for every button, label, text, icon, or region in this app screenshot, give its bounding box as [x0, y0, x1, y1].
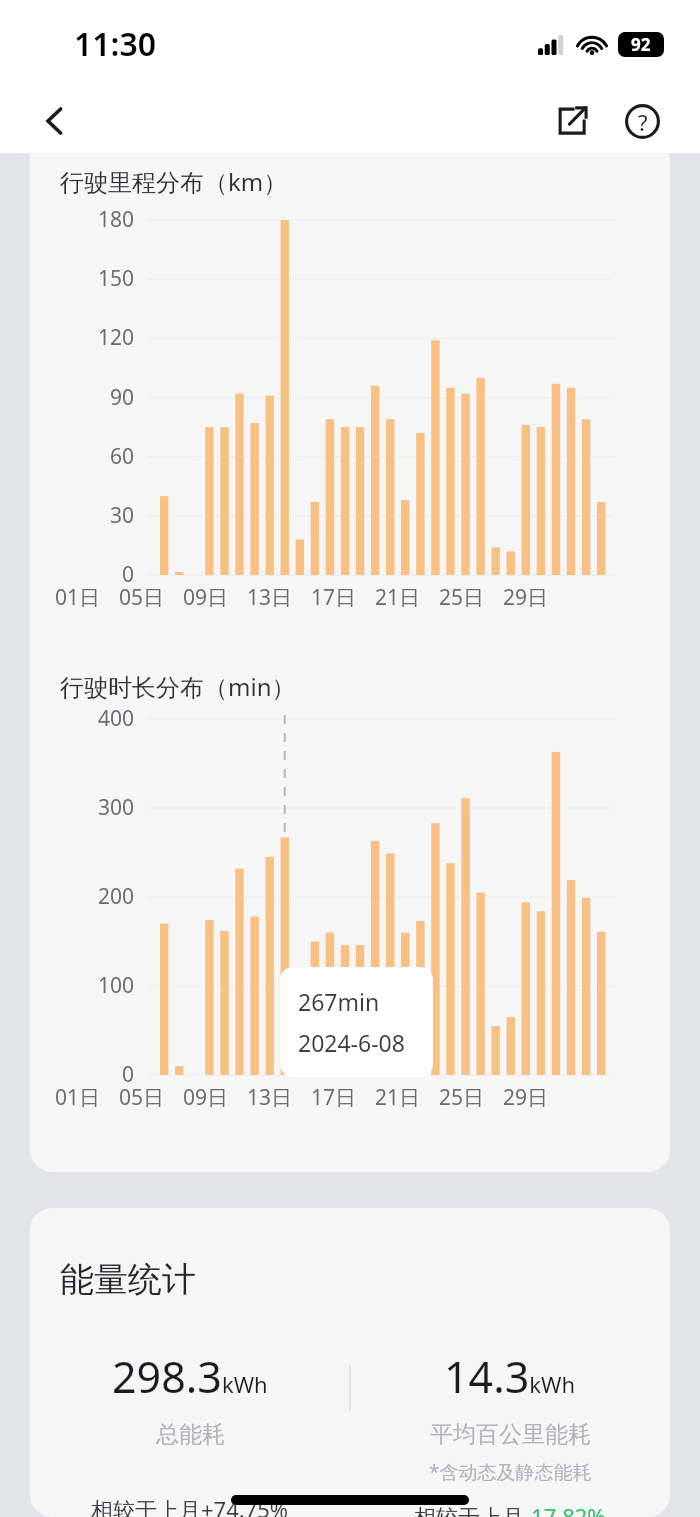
staticText: 25日 — [439, 583, 485, 612]
staticText: 01日 — [55, 583, 101, 612]
staticText: 21日 — [375, 1083, 421, 1112]
staticText: 平均百公里能耗 — [430, 1420, 591, 1449]
staticText: 120 — [30, 323, 134, 352]
staticText: 2024-6-08 — [298, 1027, 405, 1058]
staticText: 267min — [298, 986, 380, 1017]
staticText: 总能耗 — [156, 1420, 225, 1449]
button[interactable]: Share — [544, 93, 600, 149]
staticText: 09日 — [183, 583, 229, 612]
staticText: 相较于上月+74.75% — [91, 1494, 289, 1517]
staticText: 05日 — [119, 583, 165, 612]
staticText: 01日 — [55, 1083, 101, 1112]
button[interactable]: Back — [26, 92, 84, 150]
staticText: 行驶时长分布（min） — [60, 670, 296, 703]
button[interactable]: 267min — [280, 967, 433, 1077]
staticText: 300 — [30, 793, 134, 822]
staticText: 400 — [30, 704, 134, 733]
staticText: 13日 — [247, 583, 293, 612]
staticText: 14.3kWh — [444, 1347, 576, 1406]
staticText: 25日 — [439, 1083, 485, 1112]
staticText: 能量统计 — [60, 1258, 196, 1301]
staticText: 92 — [631, 33, 651, 56]
staticText: 0 — [30, 1060, 134, 1089]
staticText: 298.3kWh — [112, 1347, 268, 1406]
staticText: 13日 — [247, 1083, 293, 1112]
staticText: 90 — [30, 383, 134, 412]
staticText: *含动态及静态能耗 — [429, 1459, 592, 1485]
button[interactable]: Help — [614, 93, 670, 149]
staticText: 30 — [30, 501, 134, 530]
staticText: 行驶里程分布（km） — [60, 165, 288, 198]
staticText: 29日 — [503, 583, 549, 612]
staticText: 0 — [30, 560, 134, 589]
staticText: 29日 — [503, 1083, 549, 1112]
staticText: 相较于上月-17.82% — [414, 1501, 606, 1517]
staticText: 180 — [30, 205, 134, 234]
staticText: 100 — [30, 971, 134, 1000]
staticText: 17日 — [311, 1083, 357, 1112]
staticText: 05日 — [119, 1083, 165, 1112]
staticText: ? — [638, 107, 648, 137]
staticText: 60 — [30, 442, 134, 471]
staticText: 200 — [30, 882, 134, 911]
staticText: 09日 — [183, 1083, 229, 1112]
staticText: 150 — [30, 264, 134, 293]
staticText: 17日 — [311, 583, 357, 612]
staticText: 11:30 — [74, 22, 157, 66]
staticText: 21日 — [375, 583, 421, 612]
